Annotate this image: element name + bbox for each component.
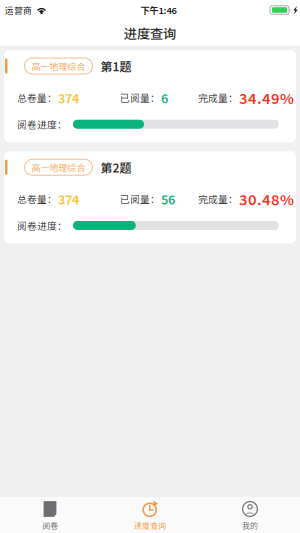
staticText: 高一地理综合 [31,59,85,72]
staticText: 高一地理综合 [31,161,85,174]
staticText: 阅卷进度： [17,218,67,232]
staticText: 6 [161,88,168,107]
staticText: 完成量： [198,192,238,206]
staticText: 34.49% [239,87,294,108]
button[interactable]: 我的 [200,496,300,533]
button[interactable]: 阅卷 [0,496,100,533]
staticText: 30.48% [239,188,294,209]
staticText: 下午1:46 [140,3,176,17]
staticText: 总卷量： [17,192,57,206]
staticText: 我的 [242,519,258,531]
button[interactable]: 进度查询 [100,496,200,533]
staticText: 374 [58,190,79,208]
staticText: 已阅量： [120,192,160,206]
staticText: 已阅量： [120,91,160,105]
staticText: 阅卷 [42,519,58,531]
staticText: 第2题 [100,158,131,176]
staticText: 进度查询 [124,23,176,43]
staticText: 56 [161,190,175,208]
staticText: 进度查询 [134,519,166,531]
staticText: 第1题 [100,57,131,75]
staticText: 阅卷进度： [17,117,67,131]
staticText: 完成量： [198,91,238,105]
staticText: 总卷量： [17,91,57,105]
staticText: 运营商 [5,4,32,16]
staticText: 374 [58,88,79,107]
